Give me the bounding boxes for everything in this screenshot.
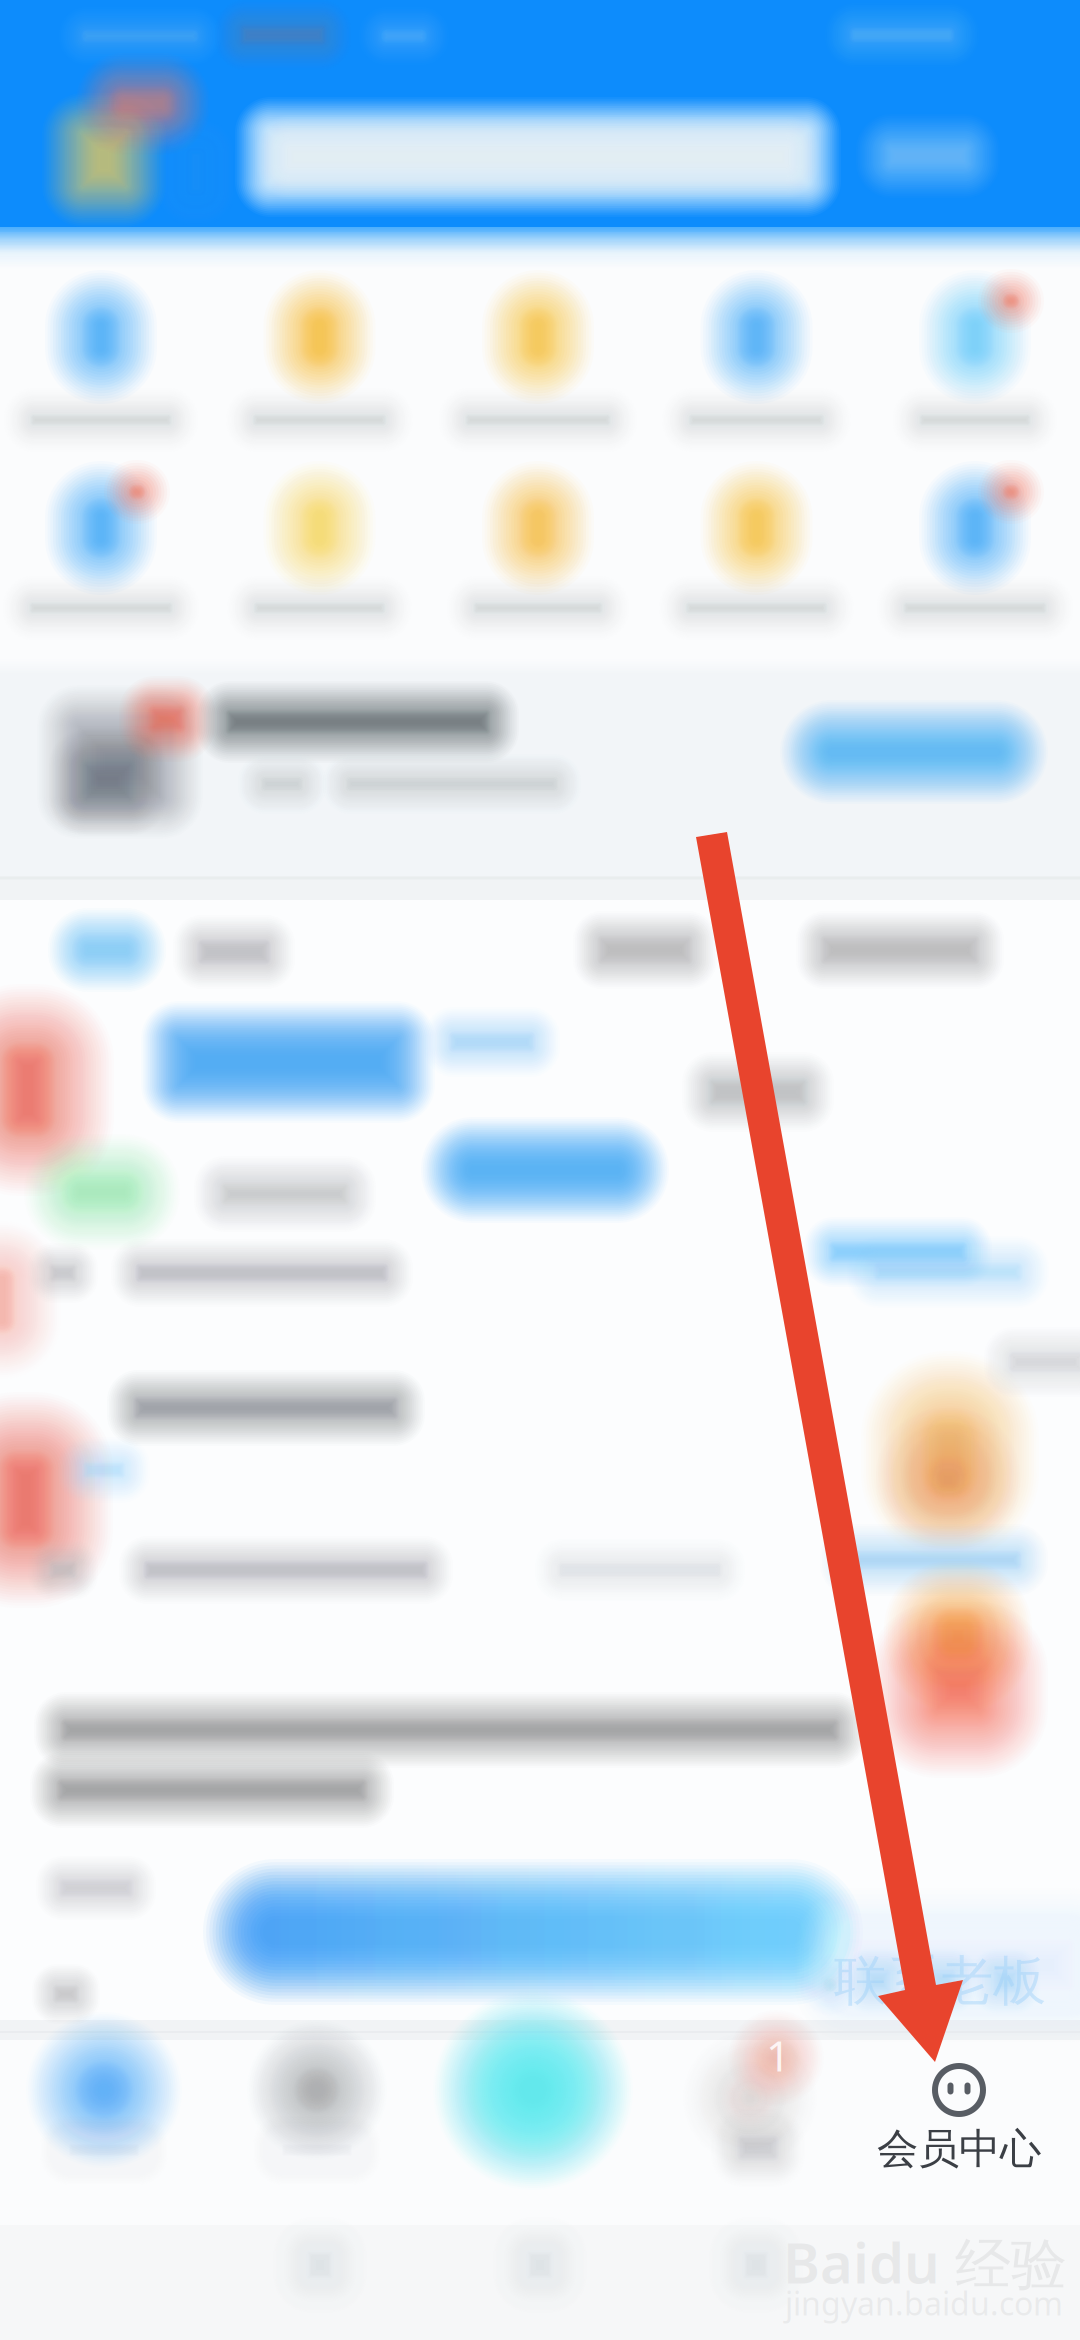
staticText: 联系老板: [834, 1948, 1046, 2014]
button[interactable]: Quick entry: [0, 0, 1080, 2340]
button[interactable]: Tab: [0, 0, 1080, 2340]
button[interactable]: 会员中心: [0, 0, 1080, 2340]
button[interactable]: Quick entry: [0, 0, 1080, 2340]
button[interactable]: Quick entry: [0, 0, 1080, 2340]
staticText: jingyan.baidu.com: [785, 2282, 1063, 2324]
button[interactable]: Quick entry: [0, 0, 1080, 2340]
button[interactable]: Quick entry: [0, 0, 1080, 2340]
staticText: Baidu 经验: [783, 2225, 1067, 2299]
button[interactable]: Quick entry: [0, 0, 1080, 2340]
button[interactable]: Quick entry: [0, 0, 1080, 2340]
button[interactable]: Quick entry: [0, 0, 1080, 2340]
button[interactable]: Quick entry: [0, 0, 1080, 2340]
button[interactable]: Messages: [0, 0, 1080, 2340]
button[interactable]: Tab: [0, 0, 1080, 2340]
button[interactable]: Tab: [0, 0, 1080, 2340]
staticText: 1: [766, 2027, 790, 2083]
staticText: 会员中心: [877, 2124, 1041, 2174]
button[interactable]: Quick entry: [0, 0, 1080, 2340]
